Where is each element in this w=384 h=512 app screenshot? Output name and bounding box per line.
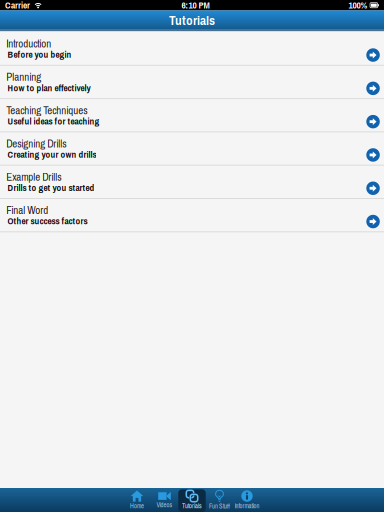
button[interactable]: Planning xyxy=(0,66,384,99)
button[interactable]: Home xyxy=(123,489,151,512)
staticText: Other success factors xyxy=(7,215,87,227)
staticText: Videos xyxy=(156,501,172,509)
button[interactable]: Introduction xyxy=(0,32,384,66)
button[interactable]: Videos xyxy=(151,489,178,512)
staticText: Drills to get you started xyxy=(7,181,94,194)
staticText: 100% xyxy=(348,0,367,12)
staticText: Creating your own drills xyxy=(7,148,96,161)
staticText: Useful ideas for teaching xyxy=(7,115,99,127)
staticText: How to plan effectively xyxy=(7,81,90,94)
staticText: Planning xyxy=(6,69,41,84)
button[interactable]: Example Drills xyxy=(0,166,384,199)
button[interactable]: Teaching Techniques xyxy=(0,99,384,132)
staticText: Final Word xyxy=(6,203,48,217)
button[interactable]: Information xyxy=(233,489,261,512)
staticText: Example Drills xyxy=(6,169,61,184)
staticText: Information xyxy=(234,502,259,510)
button[interactable]: Final Word xyxy=(0,199,384,232)
staticText: Designing Drills xyxy=(6,136,66,151)
staticText: Fun Stuff xyxy=(209,502,230,510)
staticText: Before you begin xyxy=(7,48,71,61)
staticText: Tutorials xyxy=(169,11,215,29)
button[interactable]: Tutorials xyxy=(178,489,206,512)
staticText: 6:10 PM xyxy=(182,0,210,12)
staticText: Carrier xyxy=(5,0,30,12)
staticText: Teaching Techniques xyxy=(6,103,87,117)
staticText: Tutorials xyxy=(182,502,202,510)
staticText: Introduction xyxy=(6,36,51,51)
staticText: Home xyxy=(130,502,144,510)
button[interactable]: Fun Stuff xyxy=(206,489,233,512)
button[interactable]: Designing Drills xyxy=(0,132,384,166)
